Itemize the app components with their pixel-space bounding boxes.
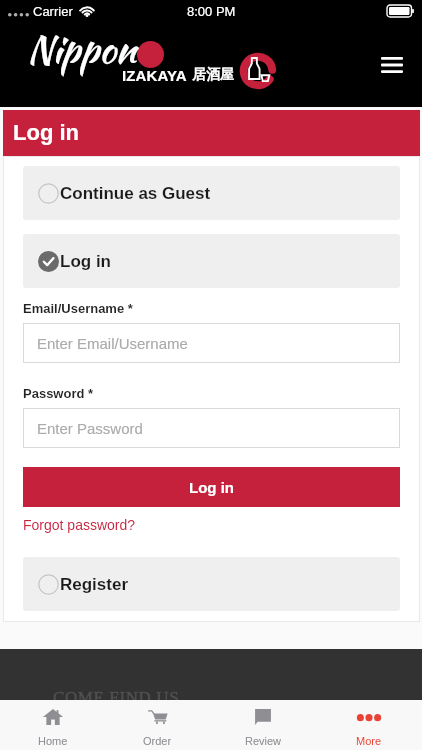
button[interactable]: Review (210, 700, 316, 750)
staticText: Carrier (33, 4, 73, 19)
staticText: 8:00 PM (187, 4, 236, 19)
button[interactable]: Log in (23, 234, 400, 288)
staticText: Email/Username * (23, 301, 133, 316)
button[interactable]: Log in (23, 467, 400, 507)
staticText: Order (143, 735, 172, 747)
staticText: COME FIND US (53, 688, 180, 700)
button[interactable]: Enter Password (23, 408, 400, 448)
staticText: Enter Password (37, 420, 143, 437)
button[interactable]: Nippon Izakaya home (28, 36, 290, 94)
button[interactable]: More (316, 700, 422, 750)
staticText: Password * (23, 386, 94, 401)
button[interactable]: Enter Email/Username (23, 323, 400, 363)
button[interactable]: Register (23, 557, 400, 611)
button[interactable]: Forgot password? (23, 517, 136, 533)
staticText: Log in (189, 479, 234, 496)
staticText: IZAKAYA (122, 67, 187, 84)
button[interactable]: Home (0, 700, 105, 750)
staticText: Review (245, 735, 282, 747)
staticText: Log in (60, 252, 111, 271)
staticText: Continue as Guest (60, 184, 211, 203)
staticText: 居酒屋 (192, 66, 234, 84)
staticText: Enter Email/Username (37, 335, 188, 352)
button[interactable]: Order (105, 700, 210, 750)
staticText: Log in (13, 120, 79, 145)
staticText: Register (60, 575, 129, 594)
button[interactable]: Menu (374, 47, 410, 83)
staticText: Home (38, 735, 68, 747)
staticText: Nippon (27, 22, 137, 77)
staticText: More (356, 735, 382, 747)
button[interactable]: Continue as Guest (23, 166, 400, 220)
